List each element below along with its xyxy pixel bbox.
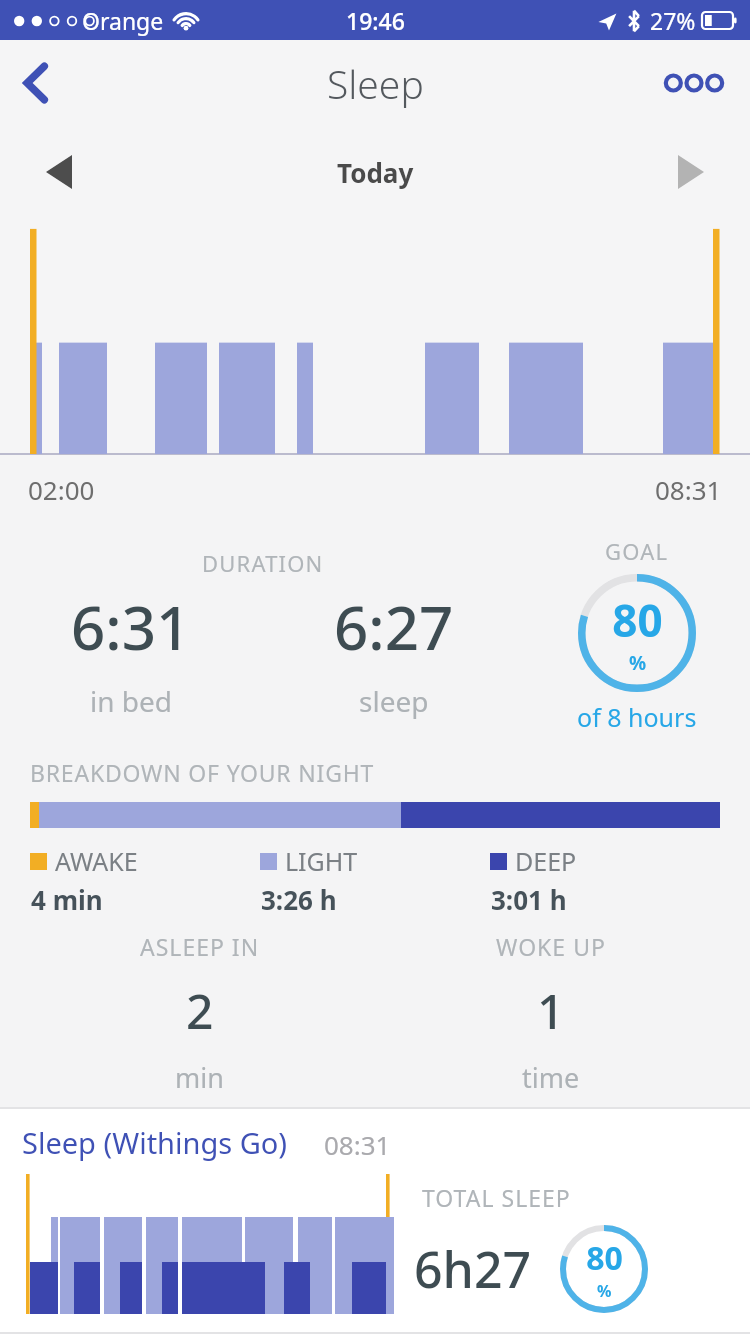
staticText: Orange xyxy=(82,5,164,36)
staticText: 19:46 xyxy=(346,5,405,36)
staticText: LIGHT xyxy=(285,844,358,878)
staticText: time xyxy=(522,1059,580,1096)
staticText: 3:26 h xyxy=(261,882,337,917)
staticText: Sleep (Withings Go) xyxy=(22,1123,288,1162)
staticText: 3:01 h xyxy=(491,882,567,917)
staticText: 27% xyxy=(650,5,696,36)
staticText: 2 xyxy=(186,978,214,1043)
staticText: GOAL xyxy=(605,536,669,566)
staticText: % xyxy=(597,1280,612,1302)
staticText: Sleep xyxy=(327,57,424,110)
staticText: 1 xyxy=(537,978,565,1043)
staticText: ASLEEP IN xyxy=(140,931,260,962)
staticText: DURATION xyxy=(202,548,324,578)
button[interactable]: Previous day xyxy=(22,135,96,209)
button[interactable]: Sleep (Withings Go) xyxy=(0,1109,750,1332)
button[interactable]: More options xyxy=(654,55,734,111)
staticText: 02:00 xyxy=(28,472,95,507)
staticText: AWAKE xyxy=(55,844,138,878)
staticText: WOKE UP xyxy=(496,931,606,962)
staticText: 6h27 xyxy=(414,1235,532,1303)
button[interactable]: Back xyxy=(4,51,68,115)
staticText: TOTAL SLEEP xyxy=(422,1182,571,1213)
staticText: of 8 hours xyxy=(577,700,697,734)
staticText: 6:31 xyxy=(71,586,191,668)
button[interactable]: Next day xyxy=(654,135,728,209)
staticText: Today xyxy=(337,155,414,190)
staticText: DEEP xyxy=(515,844,577,878)
staticText: sleep xyxy=(359,682,429,720)
staticText: 08:31 xyxy=(324,1127,391,1162)
staticText: min xyxy=(175,1059,224,1096)
staticText: 08:31 xyxy=(655,472,722,507)
staticText: 80 xyxy=(612,590,663,650)
staticText: % xyxy=(629,650,647,676)
staticText: in bed xyxy=(90,682,173,720)
staticText: BREAKDOWN OF YOUR NIGHT xyxy=(30,757,375,788)
staticText: 80 xyxy=(586,1236,623,1280)
staticText: 6:27 xyxy=(334,586,454,668)
staticText: 4 min xyxy=(31,882,103,917)
